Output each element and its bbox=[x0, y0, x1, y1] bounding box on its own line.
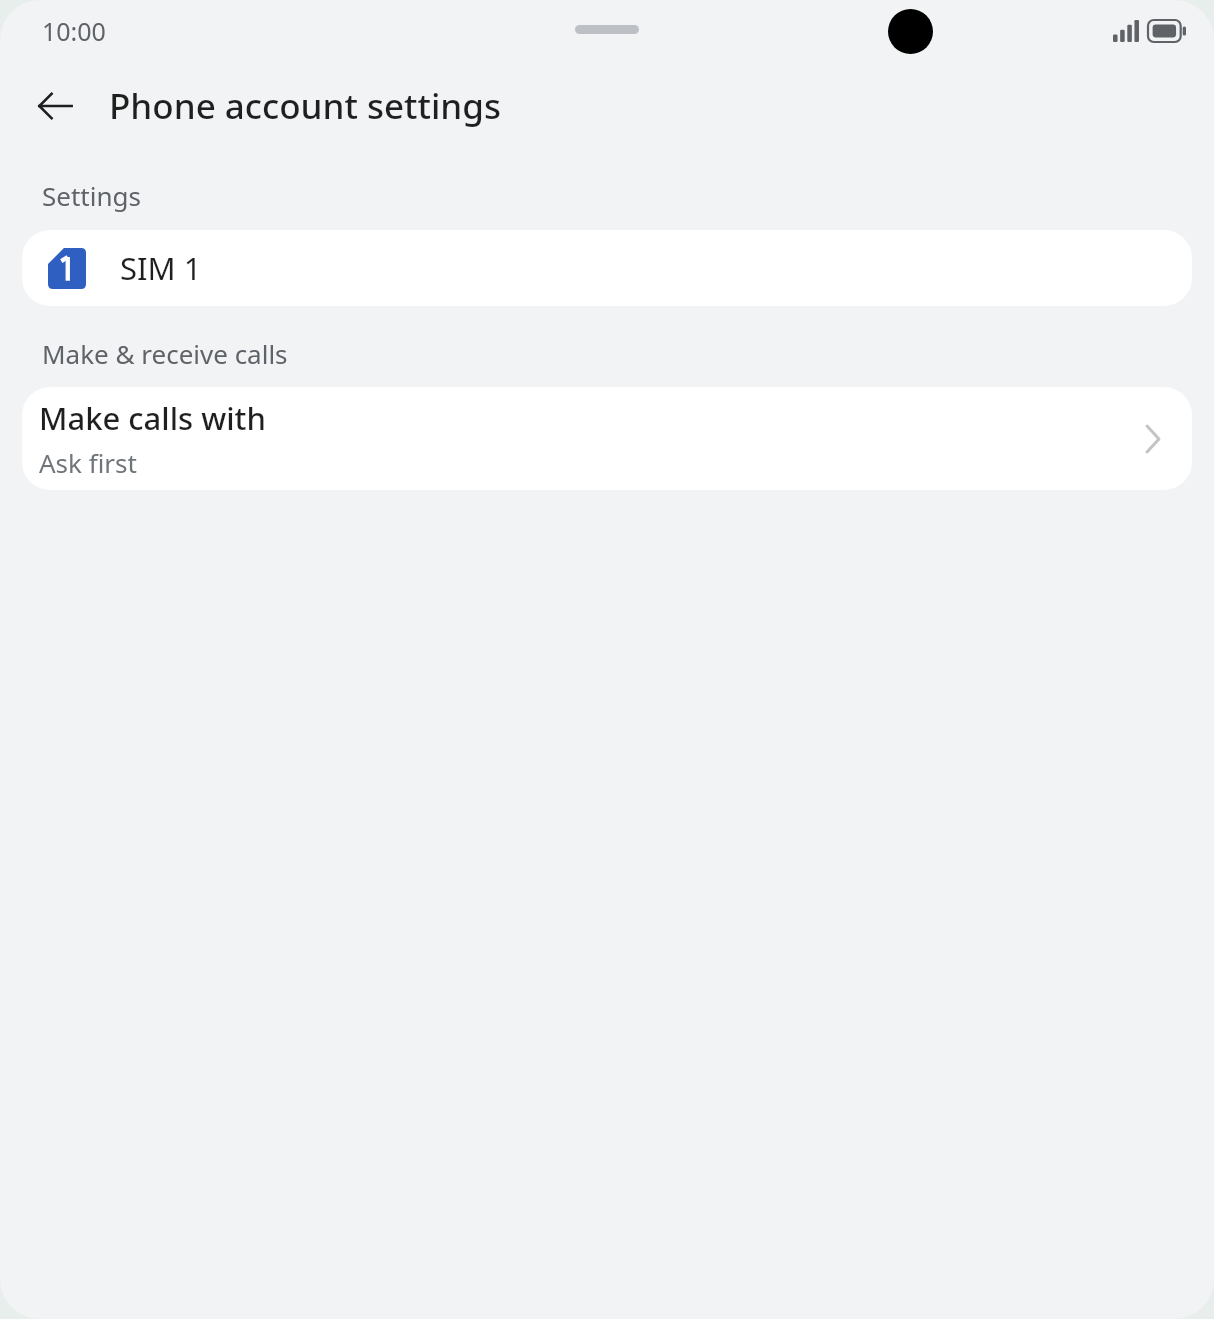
button[interactable]: Make calls with bbox=[22, 387, 1192, 490]
staticText: Make calls with bbox=[39, 397, 266, 439]
button[interactable]: Back bbox=[22, 73, 88, 139]
staticText: Ask first bbox=[39, 445, 137, 480]
staticText: Phone account settings bbox=[109, 82, 502, 130]
staticText: Make & receive calls bbox=[42, 336, 288, 371]
staticText: SIM 1 bbox=[120, 247, 202, 289]
button[interactable]: SIM 1 bbox=[22, 230, 1192, 306]
staticText: 10:00 bbox=[42, 14, 106, 48]
staticText: Settings bbox=[42, 178, 141, 213]
